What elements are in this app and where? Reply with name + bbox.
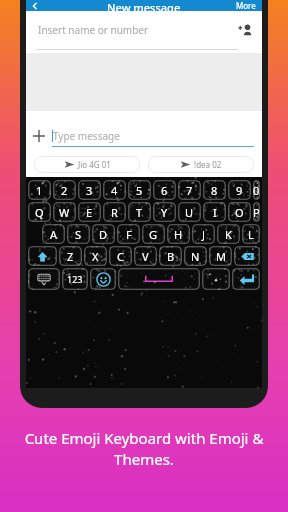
- staticText: 7: [186, 183, 193, 198]
- button[interactable]: I: [203, 202, 226, 222]
- staticText: D: [99, 227, 108, 242]
- staticText: L: [248, 227, 254, 242]
- button[interactable]: J: [192, 224, 215, 244]
- button[interactable]: Back: [31, 2, 39, 10]
- staticText: M: [216, 249, 226, 264]
- button[interactable]: Jio 4G 01: [34, 156, 140, 173]
- button[interactable]: 1: [28, 180, 51, 200]
- staticText: F: [126, 227, 132, 242]
- button[interactable]: More: [236, 0, 262, 11]
- button[interactable]: 7: [178, 180, 201, 200]
- button[interactable]: K: [217, 224, 240, 244]
- staticText: Z: [67, 249, 74, 264]
- staticText: !dea 02: [194, 159, 222, 170]
- button[interactable]: 5: [128, 180, 151, 200]
- button[interactable]: W: [53, 202, 76, 222]
- staticText: Q: [35, 205, 44, 220]
- button[interactable]: 123: [62, 268, 88, 290]
- staticText: R: [111, 205, 118, 220]
- button[interactable]: 8: [203, 180, 226, 200]
- staticText: 8: [211, 183, 218, 198]
- button[interactable]: Y: [153, 202, 176, 222]
- staticText: Cute Emoji Keyboard with Emoji & Themes.: [10, 428, 278, 470]
- staticText: T: [136, 205, 143, 220]
- staticText: 2: [61, 183, 68, 198]
- button[interactable]: C: [109, 246, 132, 266]
- staticText: N: [191, 249, 200, 264]
- button[interactable]: H: [167, 224, 190, 244]
- button[interactable]: Add contact: [238, 23, 252, 37]
- button[interactable]: key: [28, 268, 60, 290]
- button[interactable]: Z: [59, 246, 82, 266]
- button[interactable]: 3: [78, 180, 101, 200]
- button[interactable]: key: [90, 268, 116, 290]
- button[interactable]: key: [234, 246, 260, 266]
- staticText: V: [142, 249, 149, 264]
- staticText: 4: [111, 183, 118, 198]
- staticText: 3: [86, 183, 93, 198]
- staticText: U: [185, 205, 194, 220]
- button[interactable]: U: [178, 202, 201, 222]
- button[interactable]: S: [67, 224, 90, 244]
- button[interactable]: V: [134, 246, 157, 266]
- staticText: New message: [107, 0, 181, 11]
- staticText: Jio 4G 01: [78, 159, 111, 170]
- button[interactable]: F: [117, 224, 140, 244]
- button[interactable]: 9: [228, 180, 251, 200]
- staticText: X: [92, 249, 99, 264]
- button[interactable]: E: [78, 202, 101, 222]
- button[interactable]: P: [253, 202, 260, 222]
- button[interactable]: A: [42, 224, 65, 244]
- button[interactable]: R: [103, 202, 126, 222]
- button[interactable]: key: [202, 268, 230, 290]
- staticText: 9: [236, 183, 243, 198]
- button[interactable]: 6: [153, 180, 176, 200]
- staticText: W: [59, 205, 70, 220]
- staticText: 5: [136, 183, 143, 198]
- staticText: 0: [253, 183, 260, 198]
- button[interactable]: Type message: [52, 121, 254, 151]
- staticText: O: [235, 205, 244, 220]
- button[interactable]: X: [84, 246, 107, 266]
- staticText: H: [174, 227, 183, 242]
- button[interactable]: key: [232, 268, 260, 290]
- button[interactable]: L: [242, 224, 260, 244]
- staticText: More: [236, 0, 256, 11]
- button[interactable]: N: [184, 246, 207, 266]
- button[interactable]: Attach: [26, 123, 52, 149]
- staticText: S: [75, 227, 82, 242]
- button[interactable]: 0: [253, 180, 260, 200]
- staticText: Insert name or number: [38, 23, 149, 37]
- button[interactable]: M: [209, 246, 232, 266]
- button[interactable]: key: [118, 268, 200, 290]
- button[interactable]: O: [228, 202, 251, 222]
- staticText: Type message: [53, 129, 120, 143]
- staticText: 6: [161, 183, 168, 198]
- button[interactable]: 2: [53, 180, 76, 200]
- staticText: 123: [67, 273, 83, 285]
- staticText: P: [253, 205, 260, 220]
- staticText: B: [167, 249, 175, 264]
- staticText: J: [202, 227, 206, 242]
- button[interactable]: 4: [103, 180, 126, 200]
- staticText: Y: [161, 205, 168, 220]
- staticText: A: [50, 227, 58, 242]
- button[interactable]: key: [28, 246, 57, 266]
- staticText: 1: [36, 183, 43, 198]
- button[interactable]: G: [142, 224, 165, 244]
- staticText: C: [117, 249, 124, 264]
- button[interactable]: T: [128, 202, 151, 222]
- button[interactable]: B: [159, 246, 182, 266]
- button[interactable]: Q: [28, 202, 51, 222]
- staticText: K: [225, 227, 232, 242]
- staticText: G: [149, 227, 158, 242]
- staticText: E: [86, 205, 93, 220]
- staticText: I: [213, 205, 217, 220]
- button[interactable]: D: [92, 224, 115, 244]
- button[interactable]: !dea 02: [148, 156, 254, 173]
